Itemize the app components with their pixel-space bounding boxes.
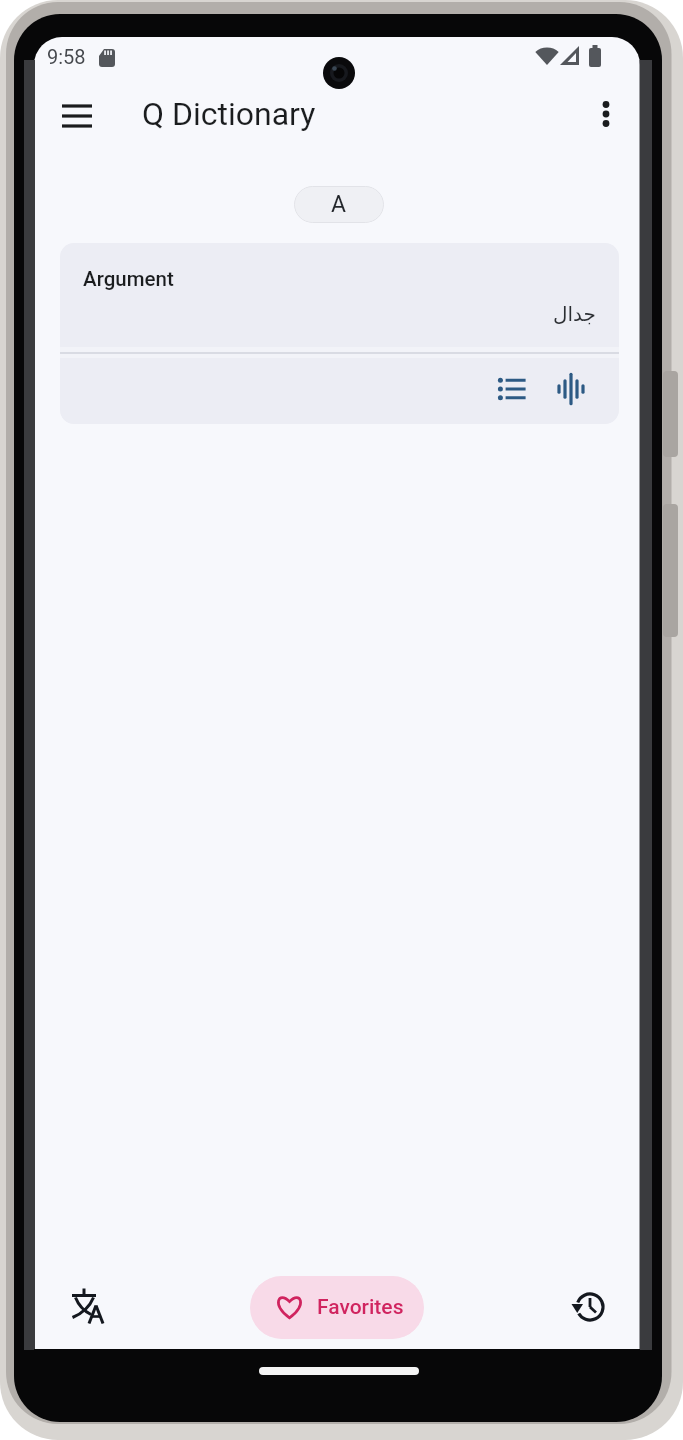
- button[interactable]: [584, 92, 628, 136]
- button[interactable]: [566, 1283, 614, 1331]
- button[interactable]: Favorites: [250, 1276, 424, 1339]
- button[interactable]: [55, 94, 99, 138]
- staticText: 9:58: [47, 45, 86, 68]
- button[interactable]: [547, 365, 595, 413]
- staticText: Favorites: [317, 1295, 404, 1320]
- button[interactable]: [487, 365, 535, 413]
- staticText: جدال: [553, 302, 596, 325]
- button[interactable]: [63, 1284, 111, 1332]
- button[interactable]: A: [294, 186, 384, 223]
- button[interactable]: [60, 243, 619, 352]
- staticText: A: [331, 191, 347, 218]
- staticText: Q Dictionary: [142, 95, 316, 133]
- staticText: Argument: [83, 267, 174, 291]
